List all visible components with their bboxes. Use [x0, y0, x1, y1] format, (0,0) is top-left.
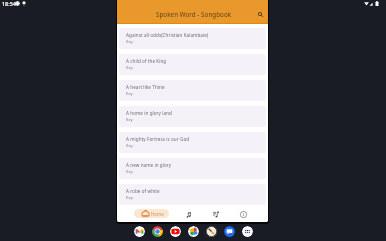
button[interactable]: A heart like Thine [119, 80, 266, 101]
button[interactable]: Against all odds(Christian Kalambaie) [119, 28, 266, 49]
button[interactable]: All apps [242, 226, 253, 237]
staticText: Key: [126, 91, 134, 96]
staticText: Key: [126, 143, 134, 148]
button[interactable]: Chrome [152, 226, 163, 237]
button[interactable]: Messages [224, 226, 235, 237]
button[interactable]: A mighty Fortress is our God [119, 132, 266, 153]
button[interactable]: Photos [188, 226, 199, 237]
button[interactable]: Playlist [207, 205, 225, 222]
staticText: Spoken Word - Songbook [156, 10, 232, 18]
staticText: A heart like Thine [126, 84, 165, 90]
staticText: Key: [126, 117, 134, 122]
button[interactable]: A robe of white [119, 184, 266, 205]
staticText: A home in glory land [126, 110, 172, 116]
button[interactable]: A new name in glory [119, 158, 266, 179]
staticText: Key: [126, 195, 134, 200]
staticText: Home [151, 211, 164, 217]
staticText: 18:54 [2, 0, 16, 7]
button[interactable]: Home [134, 209, 169, 218]
button[interactable]: YouTube [170, 226, 181, 237]
staticText: A new name in glory [126, 162, 172, 168]
button[interactable]: Gmail [134, 226, 145, 237]
button[interactable]: Info [234, 205, 252, 222]
staticText: A robe of white [126, 188, 160, 194]
button[interactable]: A home in glory land [119, 106, 266, 127]
button[interactable]: Search [255, 9, 266, 20]
staticText: Against all odds(Christian Kalambaie) [126, 32, 209, 38]
button[interactable]: Music [179, 205, 197, 222]
staticText: Key: [126, 169, 134, 174]
button[interactable]: A child of the King [119, 54, 266, 75]
staticText: A mighty Fortress is our God [126, 136, 190, 142]
button[interactable]: Clock [206, 226, 217, 237]
staticText: A child of the King [126, 58, 167, 64]
staticText: Key: [126, 39, 134, 44]
staticText: Key: [126, 65, 134, 70]
